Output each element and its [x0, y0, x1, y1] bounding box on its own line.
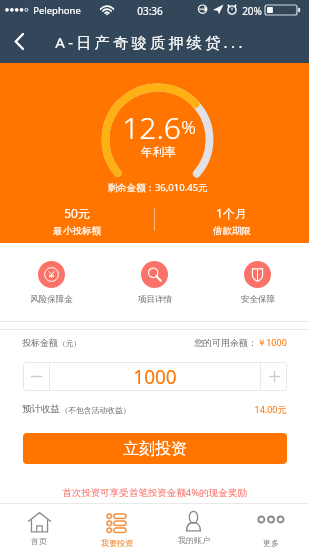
staticText: 投标金额: [22, 337, 58, 348]
staticText: 安全保障: [241, 294, 275, 305]
staticText: A-日产奇骏质押续贷...: [55, 32, 246, 52]
button[interactable]: 首页: [0, 504, 78, 550]
staticText: %: [181, 115, 196, 140]
staticText: 立刻投资: [123, 439, 187, 459]
staticText: 50元: [64, 205, 90, 221]
staticText: 我的账户: [178, 535, 210, 545]
staticText: 14.00元: [254, 403, 287, 415]
staticText: （元）: [58, 339, 81, 348]
button[interactable]: Increase amount: [261, 362, 287, 391]
button[interactable]: 项目详情: [103, 261, 206, 305]
staticText: 预计收益: [22, 403, 60, 415]
button[interactable]: 安全保障: [206, 261, 309, 305]
staticText: 12.6: [122, 107, 181, 148]
button[interactable]: 我要投资: [78, 504, 155, 550]
button[interactable]: Decrease amount: [23, 362, 49, 391]
staticText: 我要投资: [101, 538, 133, 548]
button[interactable]: 更多: [232, 504, 309, 550]
staticText: （不包含活动收益）: [60, 405, 131, 415]
staticText: 首页: [31, 536, 47, 546]
staticText: 剩余金额：36,010.45元: [107, 181, 208, 194]
staticText: 项目详情: [138, 294, 172, 305]
staticText: 借款期限: [213, 225, 251, 237]
staticText: 年利率: [141, 145, 176, 159]
staticText: 最小投标额: [53, 225, 101, 237]
staticText: 更多: [263, 538, 279, 548]
staticText: 1个月: [216, 205, 247, 221]
staticText: 20%: [242, 4, 262, 18]
staticText: ￥1000: [257, 336, 287, 348]
staticText: 03:36: [137, 4, 163, 18]
button[interactable]: 我的账户: [155, 504, 232, 550]
button[interactable]: 立刻投资: [23, 433, 287, 464]
button[interactable]: Back: [0, 20, 38, 63]
staticText: 风险保障金: [30, 294, 73, 305]
staticText: 1000: [133, 364, 177, 390]
staticText: 首次投资可享受首笔投资金额4%的现金奖励: [62, 486, 247, 499]
button[interactable]: 风险保障金: [0, 261, 103, 305]
staticText: 您的可用余额：: [194, 337, 257, 348]
staticText: Pelephone: [33, 4, 81, 17]
